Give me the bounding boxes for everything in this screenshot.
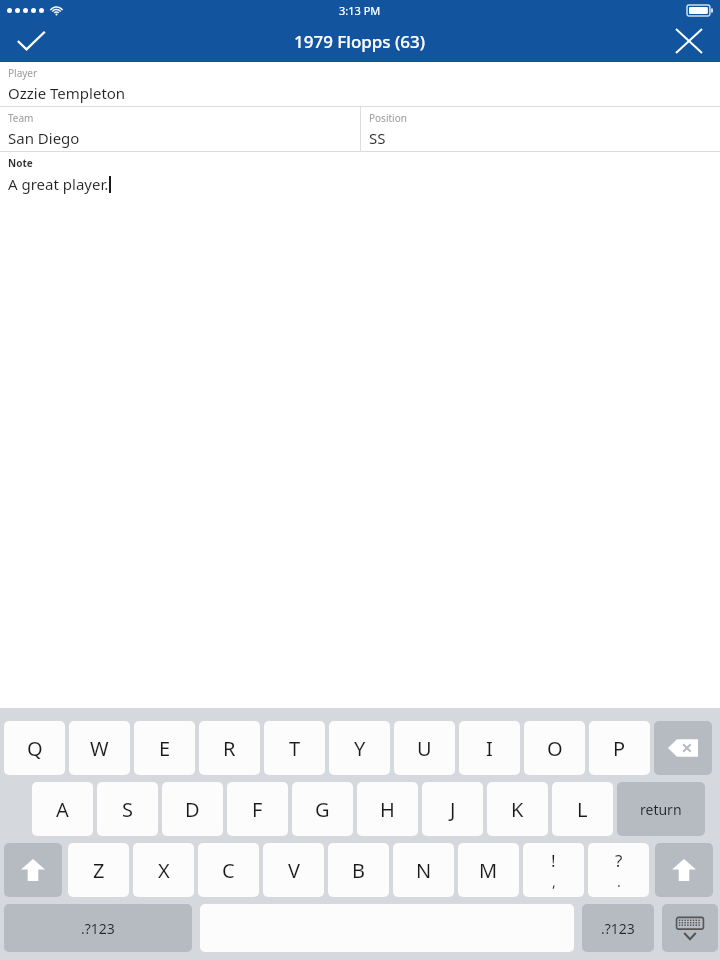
staticText: N [416,857,432,884]
button[interactable]: A [32,782,93,836]
button[interactable]: Shift [655,843,713,897]
button[interactable]: D [162,782,223,836]
button[interactable]: U [394,721,455,775]
staticText: E [159,735,171,762]
staticText: H [380,796,395,823]
staticText: San Diego [8,128,80,148]
button[interactable]: N [393,843,454,897]
staticText: Position [369,111,407,125]
staticText: , [552,872,556,891]
button[interactable]: L [552,782,613,836]
staticText: Player [8,66,38,80]
button[interactable]: K [487,782,548,836]
button[interactable]: .?123 [582,904,654,952]
staticText: L [577,796,588,823]
button[interactable]: X [133,843,194,897]
staticText: M [479,857,498,884]
button[interactable]: E [134,721,195,775]
button[interactable]: Y [329,721,390,775]
button[interactable]: Player [0,62,720,106]
button[interactable]: F [227,782,288,836]
staticText: return [640,800,682,819]
staticText: P [613,735,626,762]
staticText: Z [93,857,105,884]
button[interactable]: Backspace [654,721,712,775]
button[interactable]: .?123 [4,904,192,952]
staticText: Y [354,735,366,762]
staticText: U [417,735,432,762]
button[interactable]: W [69,721,130,775]
staticText: Q [27,735,43,762]
staticText: O [547,735,563,762]
button[interactable]: B [328,843,389,897]
button[interactable]: M [458,843,519,897]
button[interactable]: return [617,782,705,836]
button[interactable]: Z [68,843,129,897]
staticText: 1979 Flopps (63) [294,30,426,53]
button[interactable]: Done [0,20,62,62]
button[interactable]: Q [4,721,65,775]
staticText: . [617,872,621,891]
button[interactable]: G [292,782,353,836]
button[interactable]: V [263,843,324,897]
staticText: Note [8,156,33,170]
staticText: 3:13 PM [339,3,381,18]
staticText: V [288,857,300,884]
button[interactable]: Note [0,152,720,200]
staticText: B [352,857,365,884]
button[interactable]: Hide keyboard [662,904,718,952]
staticText: W [90,735,109,762]
button[interactable]: J [422,782,483,836]
button[interactable]: T [264,721,325,775]
button[interactable]: H [357,782,418,836]
staticText: A great player. [8,174,109,194]
staticText: G [315,796,330,823]
staticText: .?123 [81,919,115,938]
button[interactable]: P [589,721,650,775]
button[interactable]: Shift [4,843,62,897]
button[interactable]: Close [658,20,720,62]
staticText: Team [8,111,34,125]
staticText: SS [369,128,386,148]
staticText: C [222,857,235,884]
staticText: Ozzie Templeton [8,83,126,103]
button[interactable]: R [199,721,260,775]
button[interactable]: I [459,721,520,775]
staticText: R [223,735,236,762]
button[interactable]: S [97,782,158,836]
staticText: T [289,735,301,762]
button[interactable]: O [524,721,585,775]
staticText: ! [551,849,556,872]
staticText: A [56,796,69,823]
button[interactable]: Team [0,107,360,151]
staticText: D [185,796,200,823]
staticText: X [158,857,170,884]
staticText: .?123 [601,919,635,938]
staticText: J [450,796,456,823]
staticText: S [122,796,133,823]
button[interactable]: Position [361,107,720,151]
button[interactable]: ? [588,843,649,897]
staticText: F [252,796,263,823]
button[interactable]: C [198,843,259,897]
button[interactable]: ! [523,843,584,897]
staticText: ? [615,849,623,872]
staticText: K [511,796,524,823]
staticText: I [486,735,493,762]
